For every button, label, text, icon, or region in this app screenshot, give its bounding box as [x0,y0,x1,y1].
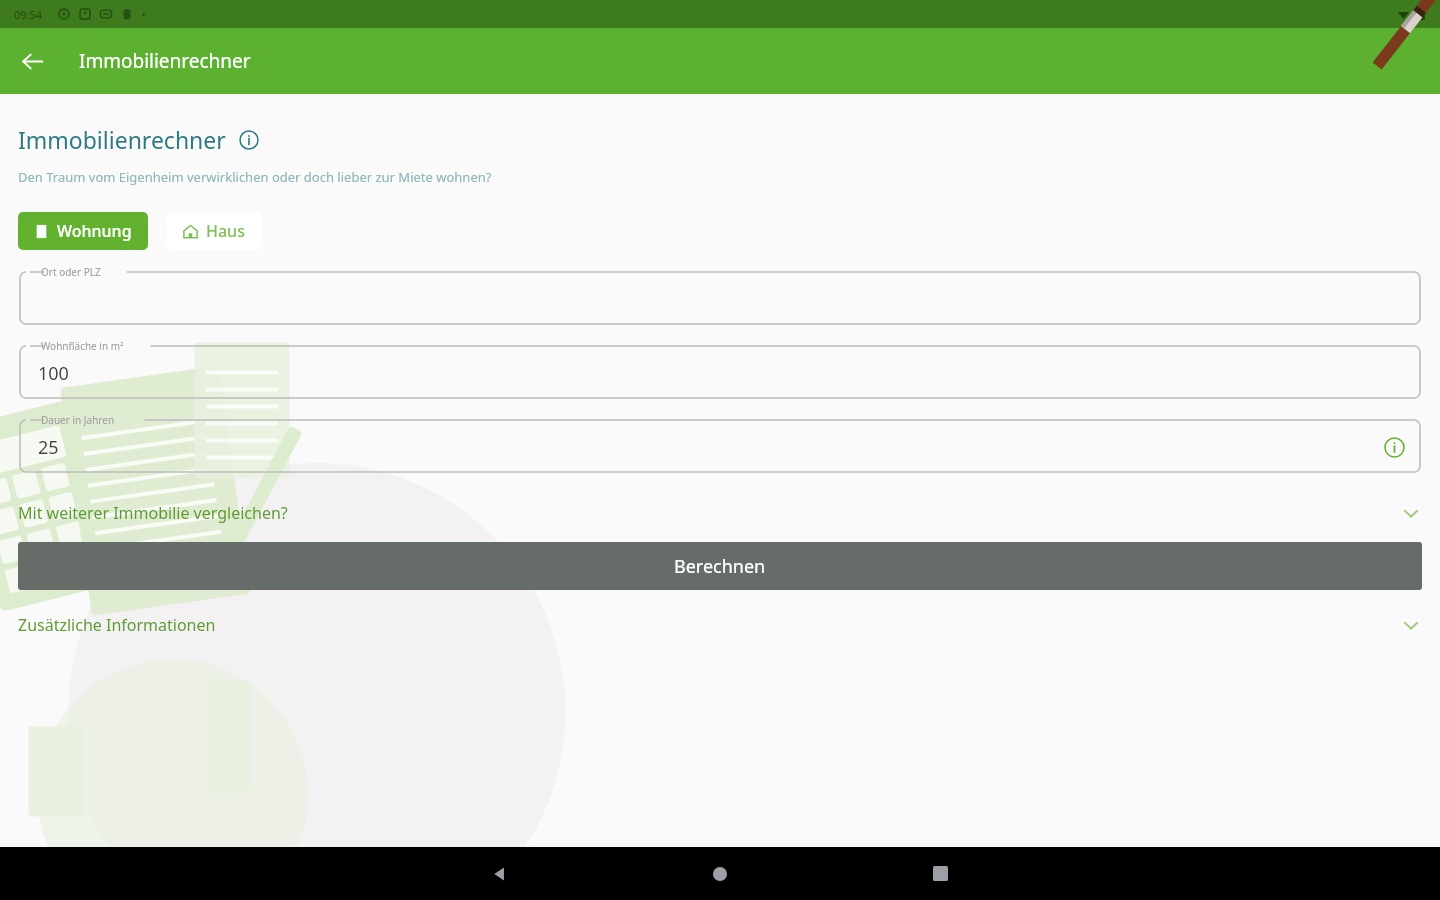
staticText: Immobilienrechner [79,48,251,74]
button[interactable]: Übersicht [830,847,1050,900]
button[interactable]: Wohnfläche in m² [18,338,1422,400]
staticText: Berechnen [674,554,766,579]
staticText: 100 [38,361,69,386]
staticText: 09:54 [14,7,43,22]
button[interactable]: Zurück [8,37,56,85]
staticText: Den Traum vom Eigenheim verwirklichen od… [18,168,492,186]
staticText: Ort oder PLZ [41,265,101,279]
button[interactable]: Zurück [390,847,610,900]
staticText: Immobilienrechner [18,124,226,155]
staticText: Wohnung [57,220,132,242]
staticText: Mit weiterer Immobilie vergleichen? [18,502,1400,524]
button[interactable]: Berechnen [18,542,1422,590]
staticText: Zusätzliche Informationen [18,614,1400,636]
button[interactable]: Mit weiterer Immobilie vergleichen? [18,496,1422,530]
staticText: Haus [206,220,245,242]
button[interactable]: Information zur Dauer [1380,433,1408,461]
button[interactable]: Haus [167,212,261,250]
button[interactable]: Dauer in Jahren [18,412,1422,474]
button[interactable]: Zusätzliche Informationen [18,608,1422,642]
staticText: Wohnfläche in m² [41,339,124,353]
button[interactable]: Startseite [610,847,830,900]
button[interactable]: Information [236,127,262,153]
staticText: 25 [38,435,59,460]
button[interactable]: Ort oder PLZ [18,264,1422,326]
staticText: Dauer in Jahren [41,413,115,427]
button[interactable]: Wohnung [18,212,148,250]
